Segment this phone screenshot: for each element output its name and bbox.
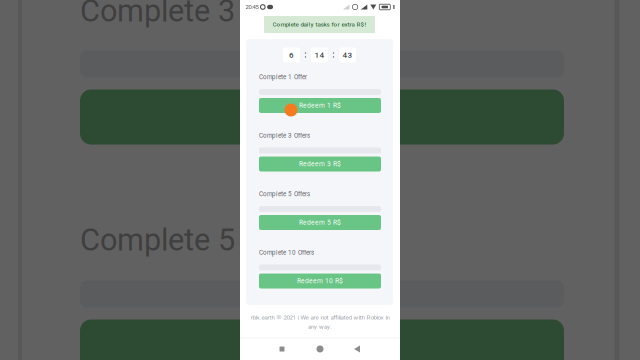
staticText: Redeem 1 R$ — [299, 102, 341, 109]
staticText: Redeem 3 R$ — [299, 160, 341, 168]
staticText: Redeem 5 R$ — [299, 219, 341, 226]
staticText: 6 — [289, 50, 294, 60]
staticText: Complete 1 Offer — [259, 73, 307, 81]
button[interactable]: Recents — [265, 338, 299, 360]
staticText: Complete 3 Offers — [80, 0, 327, 29]
staticText: Complete 5 Offers — [80, 222, 327, 258]
staticText: 14 — [314, 50, 324, 60]
button[interactable]: Complete 10 Offers — [0, 0, 640, 360]
staticText: 43 — [342, 50, 352, 60]
button[interactable]: Home — [303, 338, 337, 360]
button[interactable]: Back — [340, 338, 374, 360]
staticText: Complete 10 Offers — [259, 249, 314, 256]
staticText: 20:45 — [245, 4, 258, 10]
staticText: Complete 5 Offers — [259, 190, 310, 198]
button[interactable]: Complete 3 Offers — [0, 0, 640, 360]
staticText: Complete 3 Offers — [259, 132, 310, 139]
staticText: any way. — [308, 323, 332, 330]
button[interactable]: Complete 1 Offer — [0, 0, 640, 360]
staticText: Complete daily tasks for extra R$! — [272, 21, 366, 28]
button[interactable]: Complete 5 Offers — [0, 0, 640, 360]
staticText: rblx.earth © 2021 | We are not affiliate… — [250, 314, 389, 321]
staticText: Redeem 10 R$ — [297, 277, 343, 285]
